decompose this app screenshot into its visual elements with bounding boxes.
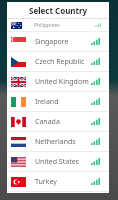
button[interactable]: Czech Republic — [7, 52, 109, 72]
button[interactable]: Ireland — [7, 92, 109, 112]
button[interactable]: Philippines — [7, 19, 109, 32]
staticText: Select Country — [29, 5, 88, 16]
button[interactable]: Singapore — [7, 32, 109, 52]
staticText: Singapore — [35, 37, 91, 47]
button[interactable]: Netherlands — [7, 132, 109, 152]
button[interactable]: United Kingdom — [7, 72, 109, 92]
staticText: Philippines — [34, 22, 95, 29]
button[interactable]: Select Country — [7, 2, 109, 18]
staticText: Turkey — [35, 177, 91, 187]
staticText: United Kingdom — [35, 77, 91, 87]
staticText: Ireland — [35, 97, 91, 107]
button[interactable]: Turkey — [7, 172, 109, 192]
staticText: Netherlands — [35, 137, 91, 147]
staticText: United States — [35, 157, 91, 167]
button[interactable]: Canada — [7, 112, 109, 132]
staticText: Canada — [35, 117, 91, 127]
staticText: Czech Republic — [35, 57, 91, 67]
button[interactable]: United States — [7, 152, 109, 172]
